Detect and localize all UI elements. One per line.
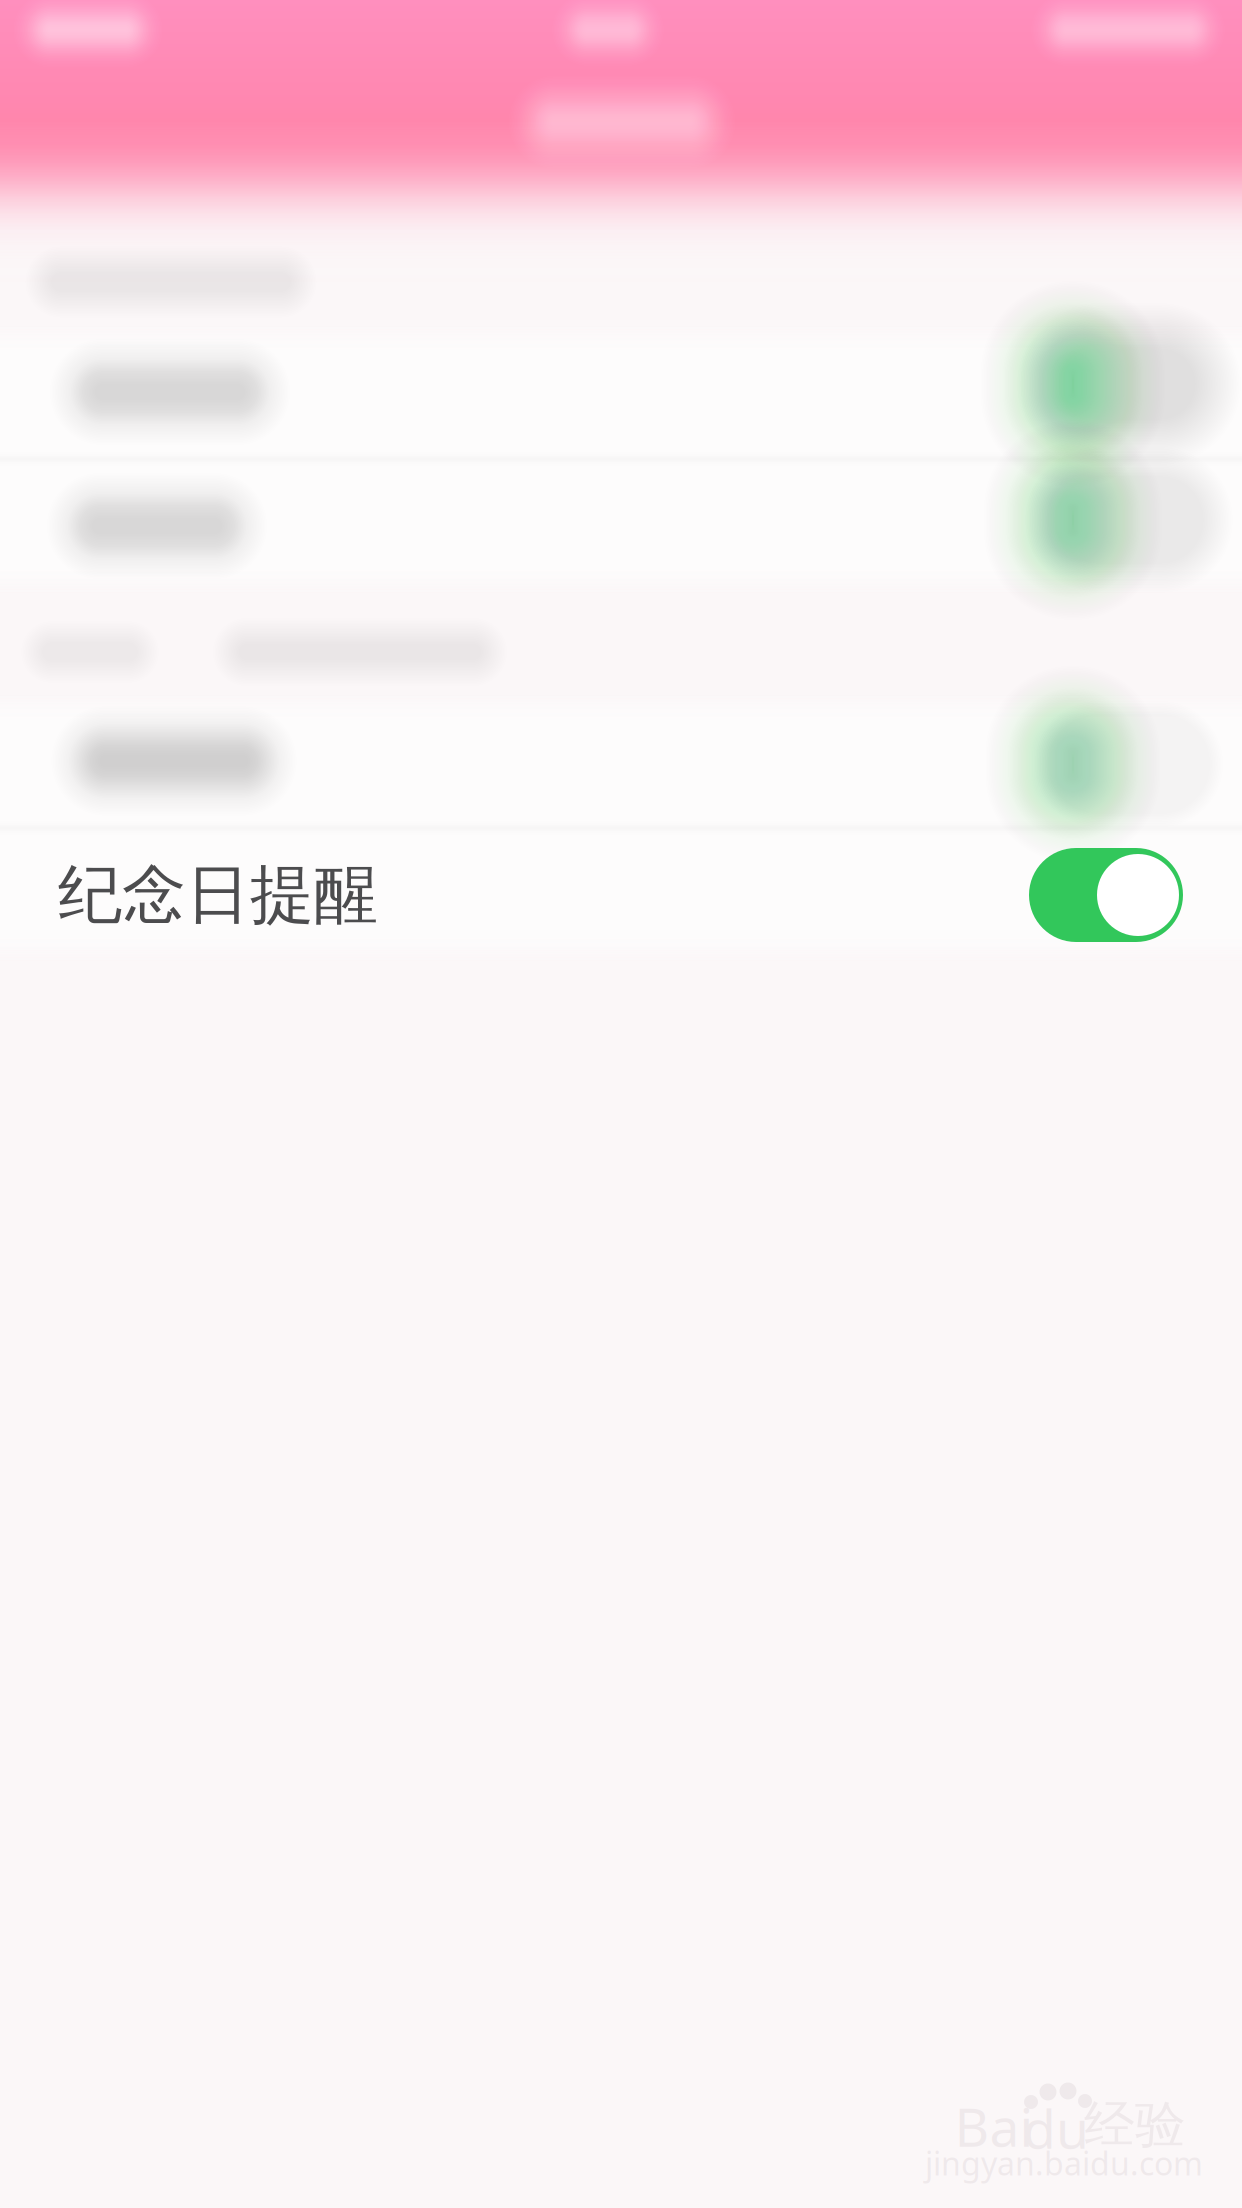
- button[interactable]: Setting: [0, 459, 1242, 593]
- button[interactable]: Setting: [0, 694, 1242, 828]
- staticText: jingyan.baidu.com: [925, 2141, 1203, 2185]
- staticText: du: [1023, 2092, 1089, 2164]
- button[interactable]: Setting: [0, 325, 1242, 459]
- staticText: 经验: [1084, 2093, 1186, 2157]
- staticText: 纪念日提醒: [58, 855, 378, 935]
- staticText: Bai: [954, 2090, 1033, 2162]
- button[interactable]: 纪念日提醒: [0, 828, 1242, 962]
